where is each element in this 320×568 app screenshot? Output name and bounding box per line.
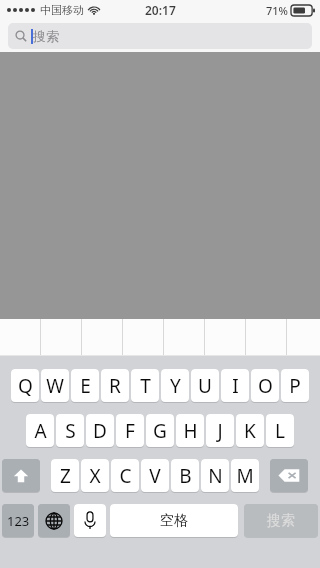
button[interactable]: I [221, 368, 249, 402]
button[interactable] [0, 319, 40, 356]
button[interactable]: O [251, 368, 279, 402]
button[interactable]: C [111, 458, 139, 492]
button[interactable]: Q [11, 368, 39, 402]
button[interactable]: 空格 [110, 503, 238, 537]
staticText: O [258, 373, 273, 399]
button[interactable]: V [141, 458, 169, 492]
staticText: 71% [266, 3, 288, 18]
button[interactable]: Switch keyboard language [38, 503, 70, 537]
staticText: 搜索 [267, 512, 295, 530]
staticText: M [236, 463, 254, 489]
button[interactable]: S [56, 413, 84, 447]
staticText: C [119, 463, 132, 489]
staticText: G [153, 418, 167, 444]
button[interactable] [40, 319, 81, 356]
staticText: W [46, 373, 64, 399]
staticText: A [34, 418, 47, 444]
staticText: J [217, 418, 223, 444]
button[interactable]: 搜索 [244, 503, 318, 537]
staticText: N [208, 463, 223, 489]
button[interactable]: J [206, 413, 234, 447]
button[interactable]: R [101, 368, 129, 402]
button[interactable]: H [176, 413, 204, 447]
button[interactable]: Voice input [74, 503, 106, 537]
button[interactable]: Shift [2, 458, 40, 492]
button[interactable]: U [191, 368, 219, 402]
button[interactable] [122, 319, 163, 356]
staticText: H [183, 418, 198, 444]
button[interactable] [286, 319, 320, 356]
button[interactable]: P [281, 368, 309, 402]
button[interactable]: D [86, 413, 114, 447]
staticText: 搜索 [33, 28, 59, 44]
staticText: U [198, 373, 212, 399]
staticText: L [275, 418, 285, 444]
button[interactable]: N [201, 458, 229, 492]
button[interactable] [245, 319, 286, 356]
staticText: X [89, 463, 101, 489]
button[interactable]: K [236, 413, 264, 447]
button[interactable]: L [266, 413, 294, 447]
button[interactable]: M [231, 458, 259, 492]
staticText: S [65, 418, 76, 444]
staticText: E [80, 373, 91, 399]
button[interactable]: X [81, 458, 109, 492]
staticText: R [109, 373, 121, 399]
staticText: 123 [7, 512, 30, 530]
button[interactable] [81, 319, 122, 356]
staticText: I [232, 373, 239, 399]
button[interactable]: W [41, 368, 69, 402]
staticText: Y [170, 373, 181, 399]
button[interactable]: 123 [2, 503, 34, 537]
button[interactable]: Z [51, 458, 79, 492]
button[interactable]: A [26, 413, 54, 447]
button[interactable]: G [146, 413, 174, 447]
staticText: 空格 [160, 512, 188, 530]
staticText: Q [18, 373, 33, 399]
staticText: B [179, 463, 192, 489]
staticText: K [244, 418, 256, 444]
staticText: F [125, 418, 135, 444]
staticText: V [149, 463, 161, 489]
staticText: Z [60, 463, 71, 489]
staticText: P [289, 373, 301, 399]
button[interactable] [163, 319, 204, 356]
button[interactable]: Y [161, 368, 189, 402]
staticText: 20:17 [145, 2, 176, 18]
button[interactable]: F [116, 413, 144, 447]
button[interactable]: B [171, 458, 199, 492]
button[interactable]: E [71, 368, 99, 402]
button[interactable]: T [131, 368, 159, 402]
button[interactable]: 搜索 [8, 23, 312, 49]
staticText: T [140, 373, 151, 399]
staticText: 中国移动 [40, 3, 84, 17]
button[interactable]: Delete [270, 458, 308, 492]
button[interactable] [204, 319, 245, 356]
staticText: D [93, 418, 107, 444]
